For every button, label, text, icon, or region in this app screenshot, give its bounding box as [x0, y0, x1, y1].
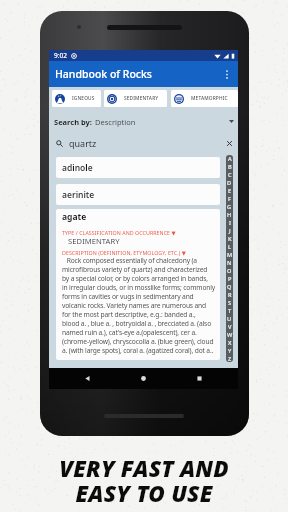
button[interactable]: Recents	[194, 373, 205, 384]
staticText: M	[227, 251, 233, 259]
button[interactable]: Back	[82, 373, 93, 384]
staticText: Description	[95, 117, 136, 127]
button[interactable]: Home	[138, 373, 149, 384]
button[interactable]: Search by:	[54, 115, 234, 128]
staticText: T	[228, 307, 232, 315]
button[interactable]: METAMORPHIC	[171, 90, 238, 107]
staticText: R	[228, 291, 232, 299]
staticText: P	[228, 275, 232, 283]
staticText: L	[228, 243, 231, 251]
staticText: SEDIMENTARY	[62, 236, 120, 246]
staticText: X	[228, 339, 232, 347]
staticText: IGNEOUS	[72, 95, 95, 102]
button[interactable]: adinole	[56, 157, 220, 178]
staticText: Z	[228, 355, 232, 362]
staticText: U	[227, 315, 232, 323]
staticText: O	[227, 267, 232, 275]
staticText: F	[228, 195, 231, 203]
staticText: VERY FAST AND	[0, 453, 288, 484]
staticText: Handbook of Rocks	[55, 67, 152, 81]
staticText: N	[227, 259, 232, 267]
staticText: Q	[227, 283, 232, 291]
staticText: H	[227, 211, 232, 219]
button[interactable]: aerinite	[56, 184, 220, 205]
staticText: B	[228, 163, 232, 171]
staticText: J	[229, 227, 231, 235]
staticText: METAMORPHIC	[191, 95, 228, 102]
staticText: quartz	[69, 137, 97, 149]
staticText: E	[228, 187, 232, 195]
staticText: G	[227, 203, 232, 211]
staticText: Search by:	[54, 117, 92, 127]
staticText: TYPE / CLASSIFICATION AND OCCURRENCE ▼	[62, 229, 176, 236]
button[interactable]: More options	[219, 66, 235, 82]
staticText: Y	[228, 347, 232, 355]
staticText: I	[229, 219, 231, 227]
staticText: DESCRIPTION (DEFINITION, ETYMOLOGY, ETC.…	[62, 249, 186, 256]
staticText: A	[228, 155, 232, 163]
staticText: Rock composed essentially of chalcedony …	[62, 256, 216, 355]
staticText: agate	[62, 211, 87, 223]
staticText: EASY TO USE	[0, 478, 288, 509]
staticText: V	[228, 323, 232, 331]
button[interactable]: agate	[56, 209, 220, 360]
staticText: D	[227, 179, 232, 187]
button[interactable]: IGNEOUS	[52, 90, 101, 107]
staticText: C	[228, 171, 232, 179]
staticText: K	[228, 235, 232, 243]
button[interactable]: quartz	[54, 136, 234, 150]
staticText: 9:02	[54, 51, 67, 60]
staticText: S	[228, 299, 232, 307]
staticText: W	[227, 331, 233, 339]
staticText: aerinite	[62, 189, 95, 201]
button[interactable]: Alphabet index	[226, 155, 233, 362]
staticText: SEDIMENTARY	[124, 95, 159, 102]
staticText: adinole	[62, 162, 93, 174]
button[interactable]: SEDIMENTARY	[104, 90, 167, 107]
